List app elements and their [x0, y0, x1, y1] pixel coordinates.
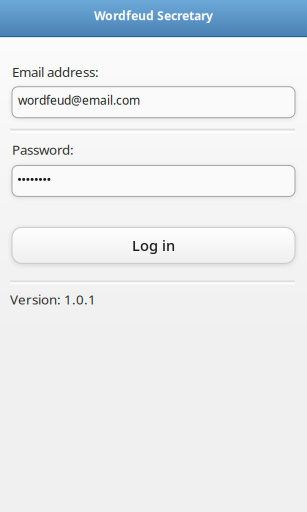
staticText: Email address:	[12, 63, 99, 81]
staticText: Version: 1.0.1	[10, 290, 96, 308]
staticText: Password:	[12, 141, 74, 158]
button[interactable]: Log in	[0, 227, 295, 263]
staticText: Wordfeud Secretary	[94, 7, 213, 23]
staticText: wordfeud@email.com	[18, 92, 140, 108]
staticText: Log in	[132, 236, 175, 255]
